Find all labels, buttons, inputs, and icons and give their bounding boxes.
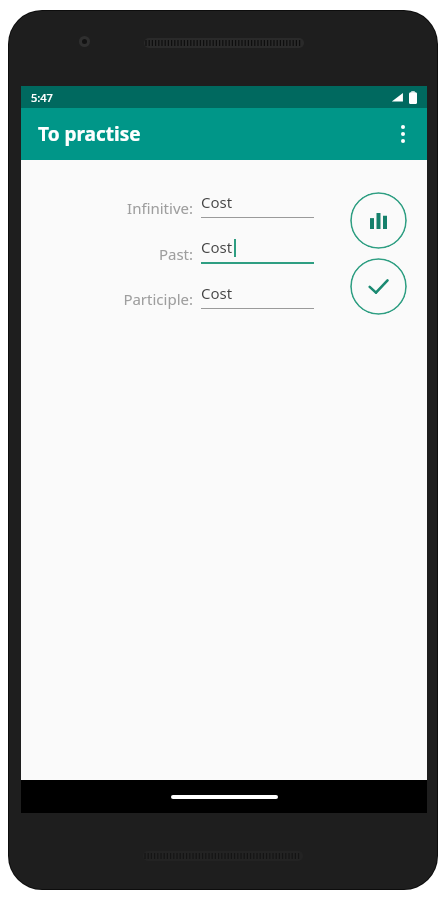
button[interactable]: Cost [201,283,314,309]
button[interactable]: Statistics [350,192,407,249]
staticText: Cost [201,192,233,212]
staticText: Infinitive: [127,198,193,218]
button[interactable]: More options [379,110,427,158]
button[interactable]: Check answer [350,258,407,315]
staticText: Cost [201,283,233,303]
button[interactable]: Cost [201,192,314,218]
staticText: Cost [201,237,233,257]
staticText: 5:47 [31,90,53,105]
button[interactable]: Cost [201,237,314,264]
staticText: Participle: [123,289,193,309]
button[interactable]: Home [171,795,278,799]
staticText: To practise [38,121,141,147]
staticText: Past: [158,244,193,264]
